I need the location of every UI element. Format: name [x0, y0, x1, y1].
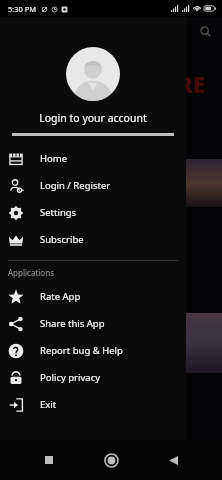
- staticText: Policy privacy: [40, 371, 101, 384]
- button[interactable]: Policy privacy: [0, 364, 186, 391]
- button[interactable]: Back: [160, 447, 186, 473]
- staticText: ERE: [166, 69, 206, 99]
- staticText: Report bug & Help: [40, 344, 123, 357]
- button[interactable]: Login to your account: [0, 17, 186, 136]
- button[interactable]: Recents: [36, 447, 62, 473]
- staticText: Applications: [8, 267, 54, 278]
- staticText: Login / Register: [40, 179, 111, 192]
- staticText: Login to your account: [39, 111, 147, 125]
- staticText: Exit: [40, 398, 57, 411]
- staticText: Rate App: [40, 290, 81, 303]
- button[interactable]: Login / Register: [0, 172, 186, 199]
- button[interactable]: Search: [196, 22, 214, 40]
- button[interactable]: Share this App: [0, 310, 186, 337]
- button[interactable]: Rate App: [0, 283, 186, 310]
- staticText: Subscribe: [40, 233, 84, 246]
- staticText: 5:30 PM: [8, 4, 37, 14]
- button[interactable]: Settings: [0, 199, 186, 226]
- staticText: Settings: [40, 206, 77, 219]
- staticText: Share this App: [40, 317, 105, 330]
- button[interactable]: Subscribe: [0, 226, 186, 253]
- staticText: Home: [40, 152, 68, 165]
- button[interactable]: Report bug & Help: [0, 337, 186, 364]
- button[interactable]: Home: [0, 145, 186, 172]
- button[interactable]: Exit: [0, 391, 186, 418]
- button[interactable]: Home: [98, 447, 124, 473]
